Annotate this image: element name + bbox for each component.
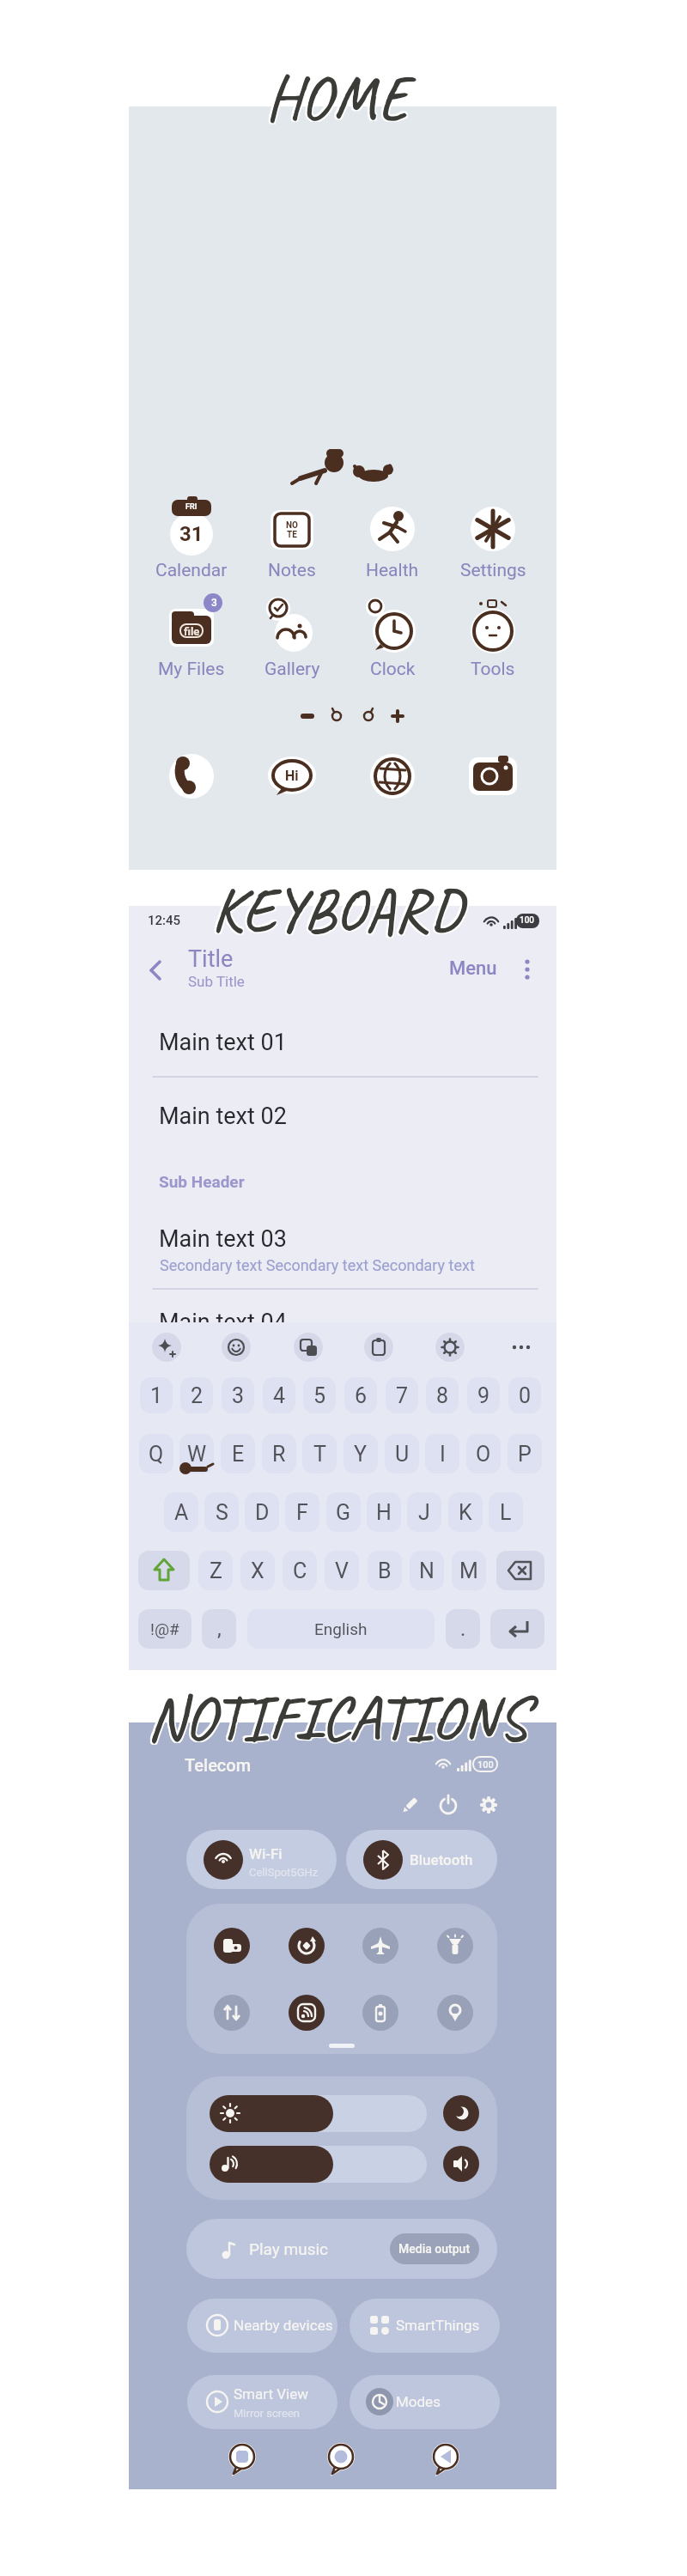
button[interactable]: [187, 2299, 337, 2353]
button[interactable]: [294, 1333, 323, 1362]
button[interactable]: [140, 1377, 173, 1413]
button[interactable]: [202, 1609, 236, 1649]
button[interactable]: [139, 1434, 173, 1473]
button[interactable]: [222, 1333, 251, 1362]
button[interactable]: [245, 496, 339, 587]
button[interactable]: [407, 1492, 441, 1532]
button[interactable]: [325, 1551, 359, 1590]
button[interactable]: [289, 1928, 325, 1964]
button[interactable]: [198, 1551, 233, 1590]
button[interactable]: [490, 1609, 544, 1649]
button[interactable]: [187, 2375, 337, 2429]
button[interactable]: [435, 1791, 462, 1819]
button[interactable]: [367, 1492, 401, 1532]
button[interactable]: [144, 496, 239, 587]
button[interactable]: [204, 1492, 239, 1532]
button[interactable]: [223, 2440, 261, 2478]
staticText: A: [174, 1500, 189, 1525]
button[interactable]: [137, 1212, 548, 1281]
button[interactable]: [475, 1791, 502, 1819]
button[interactable]: [179, 1434, 214, 1473]
button[interactable]: [390, 2233, 479, 2264]
staticText: KEYBOARD: [213, 872, 465, 951]
button[interactable]: [343, 1434, 378, 1473]
button[interactable]: [396, 1791, 423, 1819]
button[interactable]: [435, 1333, 465, 1362]
button[interactable]: [362, 746, 423, 806]
button[interactable]: [138, 1609, 192, 1649]
button[interactable]: [186, 1830, 337, 1889]
staticText: Main text 03: [159, 1225, 287, 1253]
button[interactable]: [322, 2440, 360, 2478]
button[interactable]: [437, 1928, 473, 1964]
button[interactable]: [508, 1434, 542, 1473]
button[interactable]: [285, 1492, 319, 1532]
button[interactable]: [245, 1492, 279, 1532]
button[interactable]: [489, 1492, 523, 1532]
button[interactable]: [247, 1609, 435, 1649]
button[interactable]: [137, 1018, 548, 1072]
button[interactable]: [362, 1928, 398, 1964]
button[interactable]: [350, 2375, 500, 2429]
staticText: KEYBOARD: [212, 871, 464, 949]
button[interactable]: [452, 1551, 486, 1590]
staticText: Gallery: [264, 659, 320, 680]
button[interactable]: [496, 1551, 544, 1590]
button[interactable]: [186, 2219, 497, 2279]
button[interactable]: [344, 1377, 377, 1413]
button[interactable]: [507, 1333, 536, 1362]
button[interactable]: [161, 746, 222, 806]
button[interactable]: [368, 1551, 402, 1590]
button[interactable]: [443, 2095, 479, 2131]
button[interactable]: [515, 953, 539, 987]
button[interactable]: [138, 1551, 190, 1590]
button[interactable]: [164, 1492, 198, 1532]
button[interactable]: [410, 1551, 444, 1590]
button[interactable]: [350, 2299, 500, 2353]
button[interactable]: [446, 595, 540, 686]
button[interactable]: [221, 1434, 255, 1473]
button[interactable]: [345, 496, 440, 587]
button[interactable]: [262, 1434, 296, 1473]
button[interactable]: [425, 1434, 459, 1473]
button[interactable]: [362, 1995, 398, 2031]
button[interactable]: [289, 1995, 325, 2031]
button[interactable]: [426, 1377, 459, 1413]
button[interactable]: [263, 1377, 295, 1413]
button[interactable]: [222, 1377, 254, 1413]
button[interactable]: [137, 1091, 548, 1144]
button[interactable]: [152, 1333, 181, 1362]
button[interactable]: [210, 2095, 427, 2132]
button[interactable]: [467, 1377, 500, 1413]
button[interactable]: [303, 1377, 336, 1413]
button[interactable]: [385, 1434, 419, 1473]
button[interactable]: [262, 746, 322, 806]
staticText: HOME: [264, 58, 407, 137]
button[interactable]: [326, 1492, 361, 1532]
button[interactable]: [180, 1377, 213, 1413]
staticText: NOTIFICATIONS: [149, 1680, 529, 1759]
button[interactable]: [214, 1928, 250, 1964]
button[interactable]: [427, 2440, 465, 2478]
button[interactable]: [437, 1995, 473, 2031]
button[interactable]: [214, 1995, 250, 2031]
button[interactable]: [446, 1609, 480, 1649]
button[interactable]: [466, 1434, 501, 1473]
button[interactable]: [446, 496, 540, 587]
button[interactable]: [442, 955, 507, 984]
button[interactable]: [345, 595, 440, 686]
button[interactable]: [302, 1434, 337, 1473]
button[interactable]: [346, 1830, 497, 1889]
button[interactable]: [443, 2146, 479, 2182]
button[interactable]: [508, 1377, 541, 1413]
button[interactable]: [386, 1377, 418, 1413]
button[interactable]: [144, 595, 239, 686]
button[interactable]: [364, 1333, 393, 1362]
button[interactable]: [142, 956, 171, 985]
button[interactable]: [240, 1551, 275, 1590]
button[interactable]: [210, 2146, 427, 2183]
button[interactable]: [283, 1551, 317, 1590]
button[interactable]: [245, 595, 339, 686]
button[interactable]: [463, 746, 523, 806]
button[interactable]: [448, 1492, 483, 1532]
